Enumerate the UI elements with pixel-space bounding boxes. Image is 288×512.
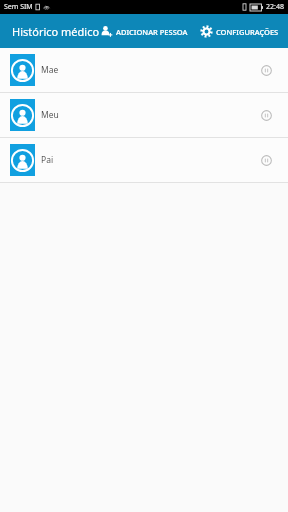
button[interactable]: Meu — [0, 93, 288, 137]
staticText: CONFIGURAÇÕES — [216, 27, 279, 37]
button[interactable]: Mais opções — [254, 58, 278, 82]
staticText: 22:48 — [266, 2, 284, 12]
button[interactable]: Mais opções — [254, 148, 278, 172]
staticText: Pai — [41, 154, 54, 166]
button[interactable]: Mais opções — [254, 103, 278, 127]
button[interactable]: CONFIGURAÇÕES — [197, 21, 282, 42]
staticText: Histórico médico — [12, 24, 100, 39]
staticText: ADICIONAR PESSOA — [116, 27, 188, 37]
button[interactable]: ADICIONAR PESSOA — [97, 21, 191, 42]
staticText: Mae — [41, 64, 59, 76]
button[interactable]: Pai — [0, 138, 288, 182]
staticText: Sem SIM — [4, 2, 33, 12]
staticText: Meu — [41, 109, 59, 121]
button[interactable]: Mae — [0, 48, 288, 92]
